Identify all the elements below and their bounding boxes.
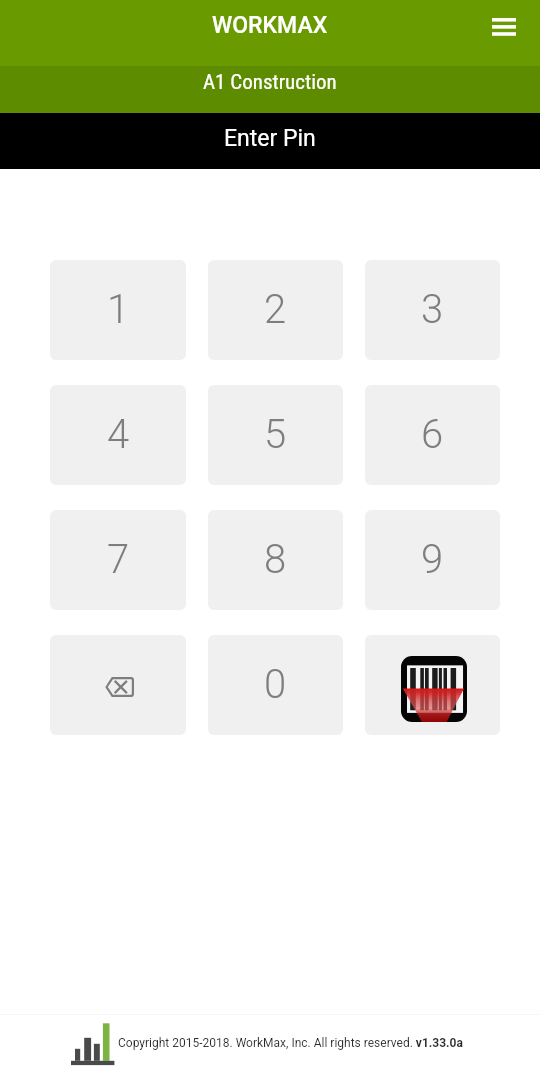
staticText: 4: [107, 411, 130, 458]
staticText: 5: [264, 411, 287, 458]
button[interactable]: 6: [365, 385, 500, 485]
button[interactable]: 4: [50, 385, 186, 485]
staticText: 7: [107, 536, 130, 583]
button[interactable]: 8: [208, 510, 343, 610]
staticText: Copyright 2015-2018. WorkMax, Inc. All r…: [118, 1036, 463, 1050]
other: Scan barcode: [401, 656, 467, 722]
staticText: 6: [421, 411, 444, 458]
staticText: 9: [421, 536, 444, 583]
button[interactable]: Scan barcode: [365, 635, 500, 735]
staticText: 1: [107, 286, 130, 333]
button[interactable]: 9: [365, 510, 500, 610]
staticText: 2: [264, 286, 287, 333]
button[interactable]: 7: [50, 510, 186, 610]
button[interactable]: 1: [50, 260, 186, 360]
button[interactable]: Backspace: [50, 635, 186, 735]
button[interactable]: 5: [208, 385, 343, 485]
button[interactable]: 3: [365, 260, 500, 360]
button[interactable]: Open navigation menu: [478, 0, 540, 66]
staticText: 3: [421, 286, 444, 333]
staticText: Enter Pin: [224, 125, 316, 152]
staticText: 8: [264, 536, 287, 583]
button[interactable]: 0: [208, 635, 343, 735]
staticText: 0: [264, 661, 287, 708]
other: Backspace: [105, 677, 134, 697]
staticText: WORKMAX: [212, 12, 328, 39]
button[interactable]: 2: [208, 260, 343, 360]
staticText: A1 Construction: [203, 70, 337, 95]
